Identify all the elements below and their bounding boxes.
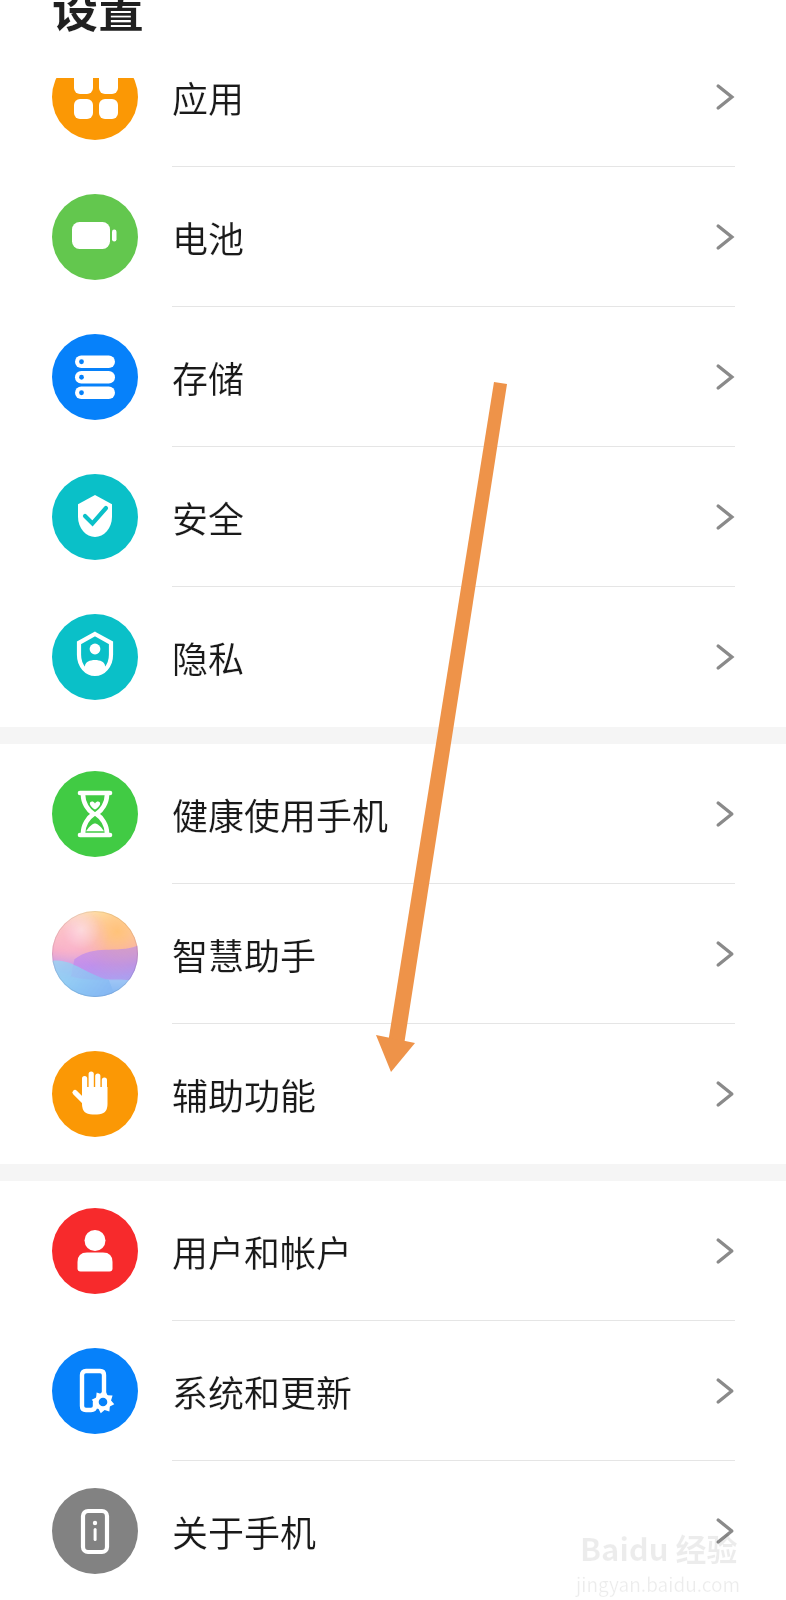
staticText: 健康使用手机 — [172, 788, 389, 840]
staticText: 用户和帐户 — [172, 1225, 353, 1277]
staticText: 应用 — [172, 71, 245, 123]
staticText: 存储 — [172, 351, 245, 403]
other: 打开智慧助手 — [700, 929, 750, 979]
other: 打开安全 — [700, 492, 750, 542]
staticText: 隐私 — [172, 631, 245, 683]
other: 打开存储 — [700, 352, 750, 402]
staticText: 智慧助手 — [172, 928, 317, 980]
button[interactable]: 系统和更新 — [0, 1321, 786, 1461]
button[interactable]: 电池 — [0, 167, 786, 307]
other: 打开应用 — [700, 72, 750, 122]
button[interactable]: 安全 — [0, 447, 786, 587]
other: 打开关于手机 — [700, 1506, 750, 1556]
staticText: jingyan.baidu.com — [576, 1570, 741, 1598]
other: 打开隐私 — [700, 632, 750, 682]
button[interactable]: 存储 — [0, 307, 786, 447]
button[interactable]: 关于手机 — [0, 1461, 786, 1600]
button[interactable]: 辅助功能 — [0, 1024, 786, 1164]
other: 打开系统和更新 — [700, 1366, 750, 1416]
staticText: 系统和更新 — [172, 1365, 353, 1417]
staticText: 辅助功能 — [172, 1068, 317, 1120]
other: 打开电池 — [700, 212, 750, 262]
button[interactable]: 健康使用手机 — [0, 744, 786, 884]
other: 打开辅助功能 — [700, 1069, 750, 1119]
button[interactable]: 用户和帐户 — [0, 1181, 786, 1321]
button[interactable]: 隐私 — [0, 587, 786, 727]
staticText: 设置 — [52, 0, 144, 41]
staticText: 关于手机 — [172, 1505, 317, 1557]
other: 打开用户和帐户 — [700, 1226, 750, 1276]
staticText: 安全 — [172, 491, 245, 543]
button[interactable]: 应用 — [0, 27, 786, 167]
button[interactable]: 智慧助手 — [0, 884, 786, 1024]
staticText: Baidu 经验 — [580, 1525, 738, 1570]
staticText: 电池 — [172, 211, 245, 263]
other: 打开健康使用手机 — [700, 789, 750, 839]
